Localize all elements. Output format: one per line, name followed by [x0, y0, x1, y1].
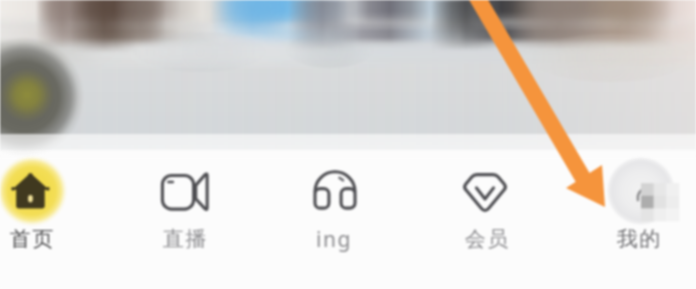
staticText: 会员 — [464, 226, 509, 252]
button[interactable]: 首页 — [0, 152, 87, 257]
staticText: 直播 — [162, 226, 207, 252]
staticText: ing — [316, 225, 352, 254]
button[interactable]: 我的 — [586, 152, 696, 257]
staticText: 首页 — [9, 226, 54, 252]
button[interactable]: 会员 — [430, 152, 540, 257]
staticText: 我的 — [616, 226, 661, 252]
button[interactable]: 直播 — [129, 152, 239, 257]
button[interactable]: ing — [280, 152, 390, 257]
